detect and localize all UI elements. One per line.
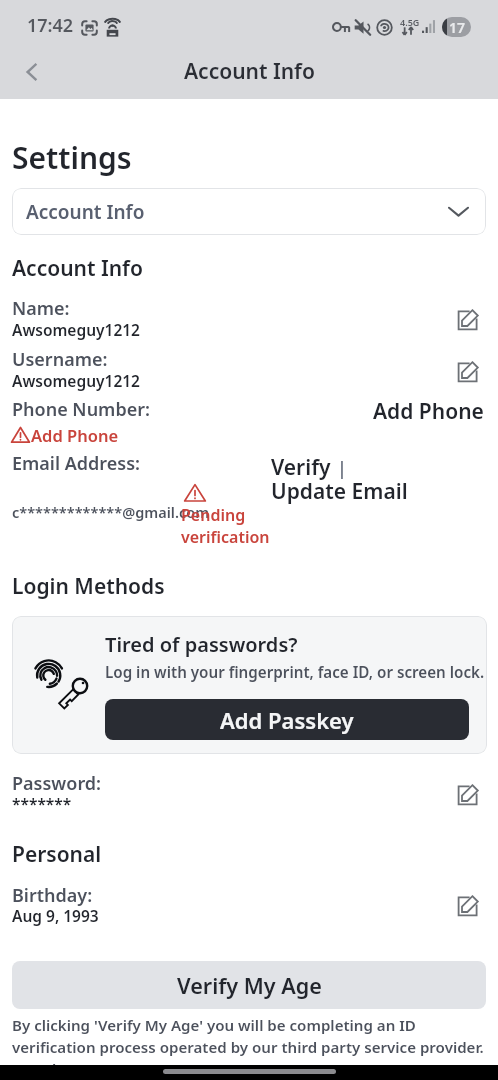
staticText: Email Address: (12, 451, 141, 476)
staticText: Verify My Age (177, 971, 322, 1000)
staticText: Phone Number: (12, 397, 150, 422)
button[interactable]: Add Passkey (105, 699, 469, 740)
staticText: 4.5G (400, 16, 420, 28)
staticText: Awsomeguy1212 (12, 370, 140, 391)
staticText: c*************@gmail.com (12, 502, 210, 522)
staticText: Settings (12, 137, 132, 178)
staticText: Birthday: (12, 883, 93, 908)
button[interactable]: Edit password (453, 780, 483, 810)
staticText: Account Info (184, 57, 315, 86)
button[interactable]: Verify (271, 453, 331, 482)
staticText: Name: (12, 296, 70, 321)
staticText: By clicking 'Verify My Age' you will be … (12, 1015, 490, 1080)
button[interactable]: Add Phone (373, 397, 484, 426)
button[interactable]: Add Phone (11, 424, 119, 446)
staticText: Log in with your fingerprint, face ID, o… (105, 662, 485, 683)
staticText: | (337, 456, 347, 481)
button[interactable]: Account Info (12, 188, 486, 235)
staticText: 17:42 (27, 13, 74, 38)
staticText: Username: (12, 347, 108, 372)
staticText: ******* (12, 793, 72, 814)
staticText: Password: (12, 771, 102, 796)
staticText: 17 (449, 18, 466, 37)
button[interactable]: Update Email (271, 477, 408, 506)
staticText: Account Info (26, 199, 145, 225)
staticText: Tired of passwords? (105, 631, 298, 658)
staticText: Add Passkey (220, 705, 354, 735)
staticText: Account Info (12, 254, 143, 283)
staticText: Pending (181, 504, 246, 526)
staticText: Aug 9, 1993 (12, 905, 99, 926)
staticText: Login Methods (12, 572, 165, 601)
staticText: Personal (12, 840, 102, 869)
button[interactable]: Edit username (453, 357, 483, 387)
staticText: Add Phone (31, 424, 119, 446)
staticText: verification (181, 526, 270, 548)
button[interactable]: Edit birthday (453, 891, 483, 921)
button[interactable]: Edit name (453, 305, 483, 335)
staticText: Awsomeguy1212 (12, 319, 140, 340)
button[interactable]: Back (14, 54, 50, 90)
button[interactable]: Verify My Age (12, 961, 486, 1009)
